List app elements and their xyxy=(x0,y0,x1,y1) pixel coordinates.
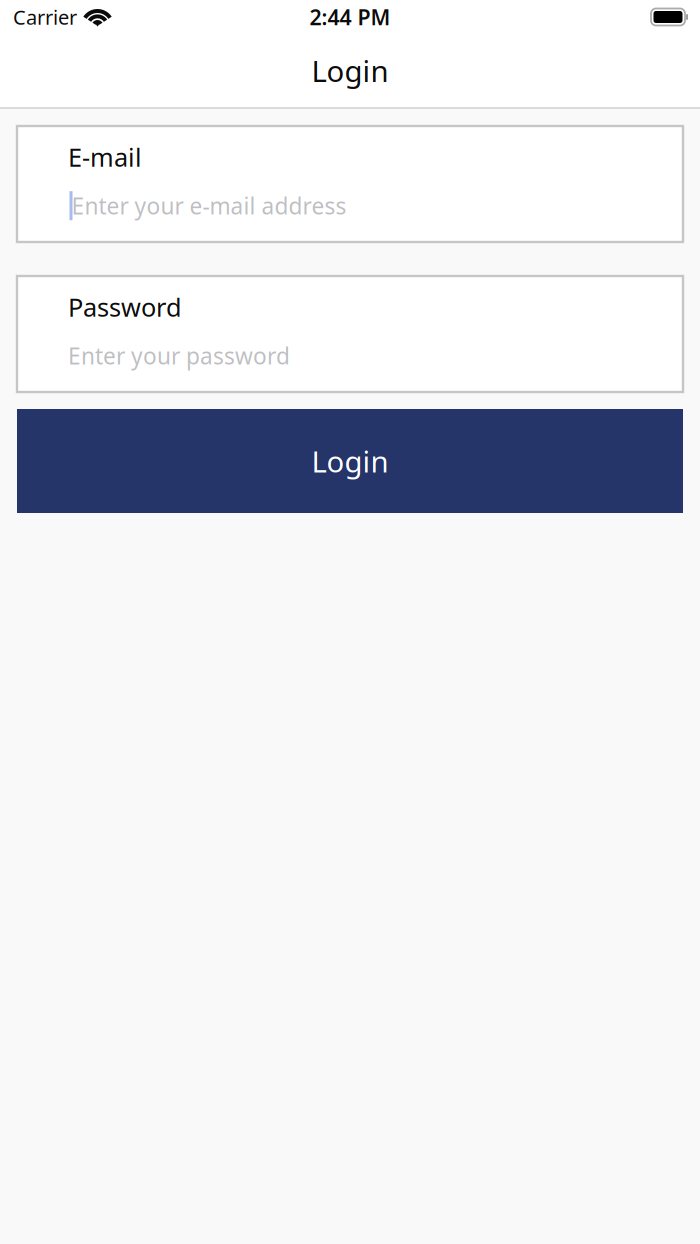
staticText: Enter your e-mail address xyxy=(71,191,346,221)
staticText: Password xyxy=(68,290,182,324)
staticText: E-mail xyxy=(68,140,142,174)
button[interactable]: Login xyxy=(17,409,683,513)
staticText: Carrier xyxy=(13,4,77,30)
staticText: Login xyxy=(311,51,388,90)
staticText: Login xyxy=(311,441,388,480)
staticText: Enter your password xyxy=(68,341,290,371)
button[interactable]: Password xyxy=(17,276,683,392)
staticText: 2:44 PM xyxy=(309,3,390,31)
button[interactable]: E-mail xyxy=(17,126,683,242)
